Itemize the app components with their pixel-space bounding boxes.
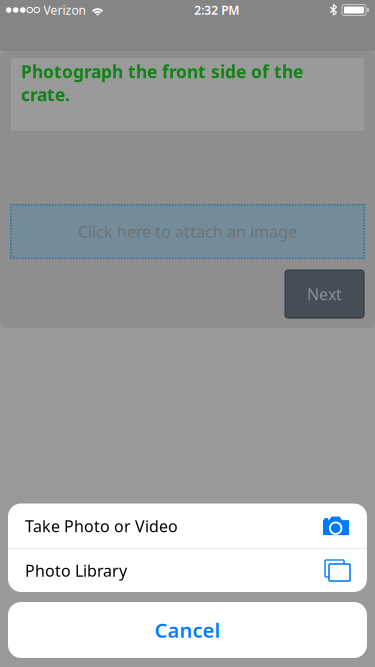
button[interactable]: Photo Library [8,549,367,592]
button[interactable]: Next [285,270,364,318]
staticText: Photograph the front side of the crate. [21,60,303,106]
button[interactable]: Take Photo or Video [8,503,367,548]
staticText: Verizon [43,2,85,18]
staticText: Click here to attach an image [78,221,297,242]
staticText: Take Photo or Video [25,515,178,537]
staticText: Photo Library [25,560,127,581]
staticText: Next [307,283,342,305]
button[interactable]: Cancel [8,602,367,658]
staticText: Cancel [154,617,220,643]
staticText: 2:32 PM [194,2,239,18]
